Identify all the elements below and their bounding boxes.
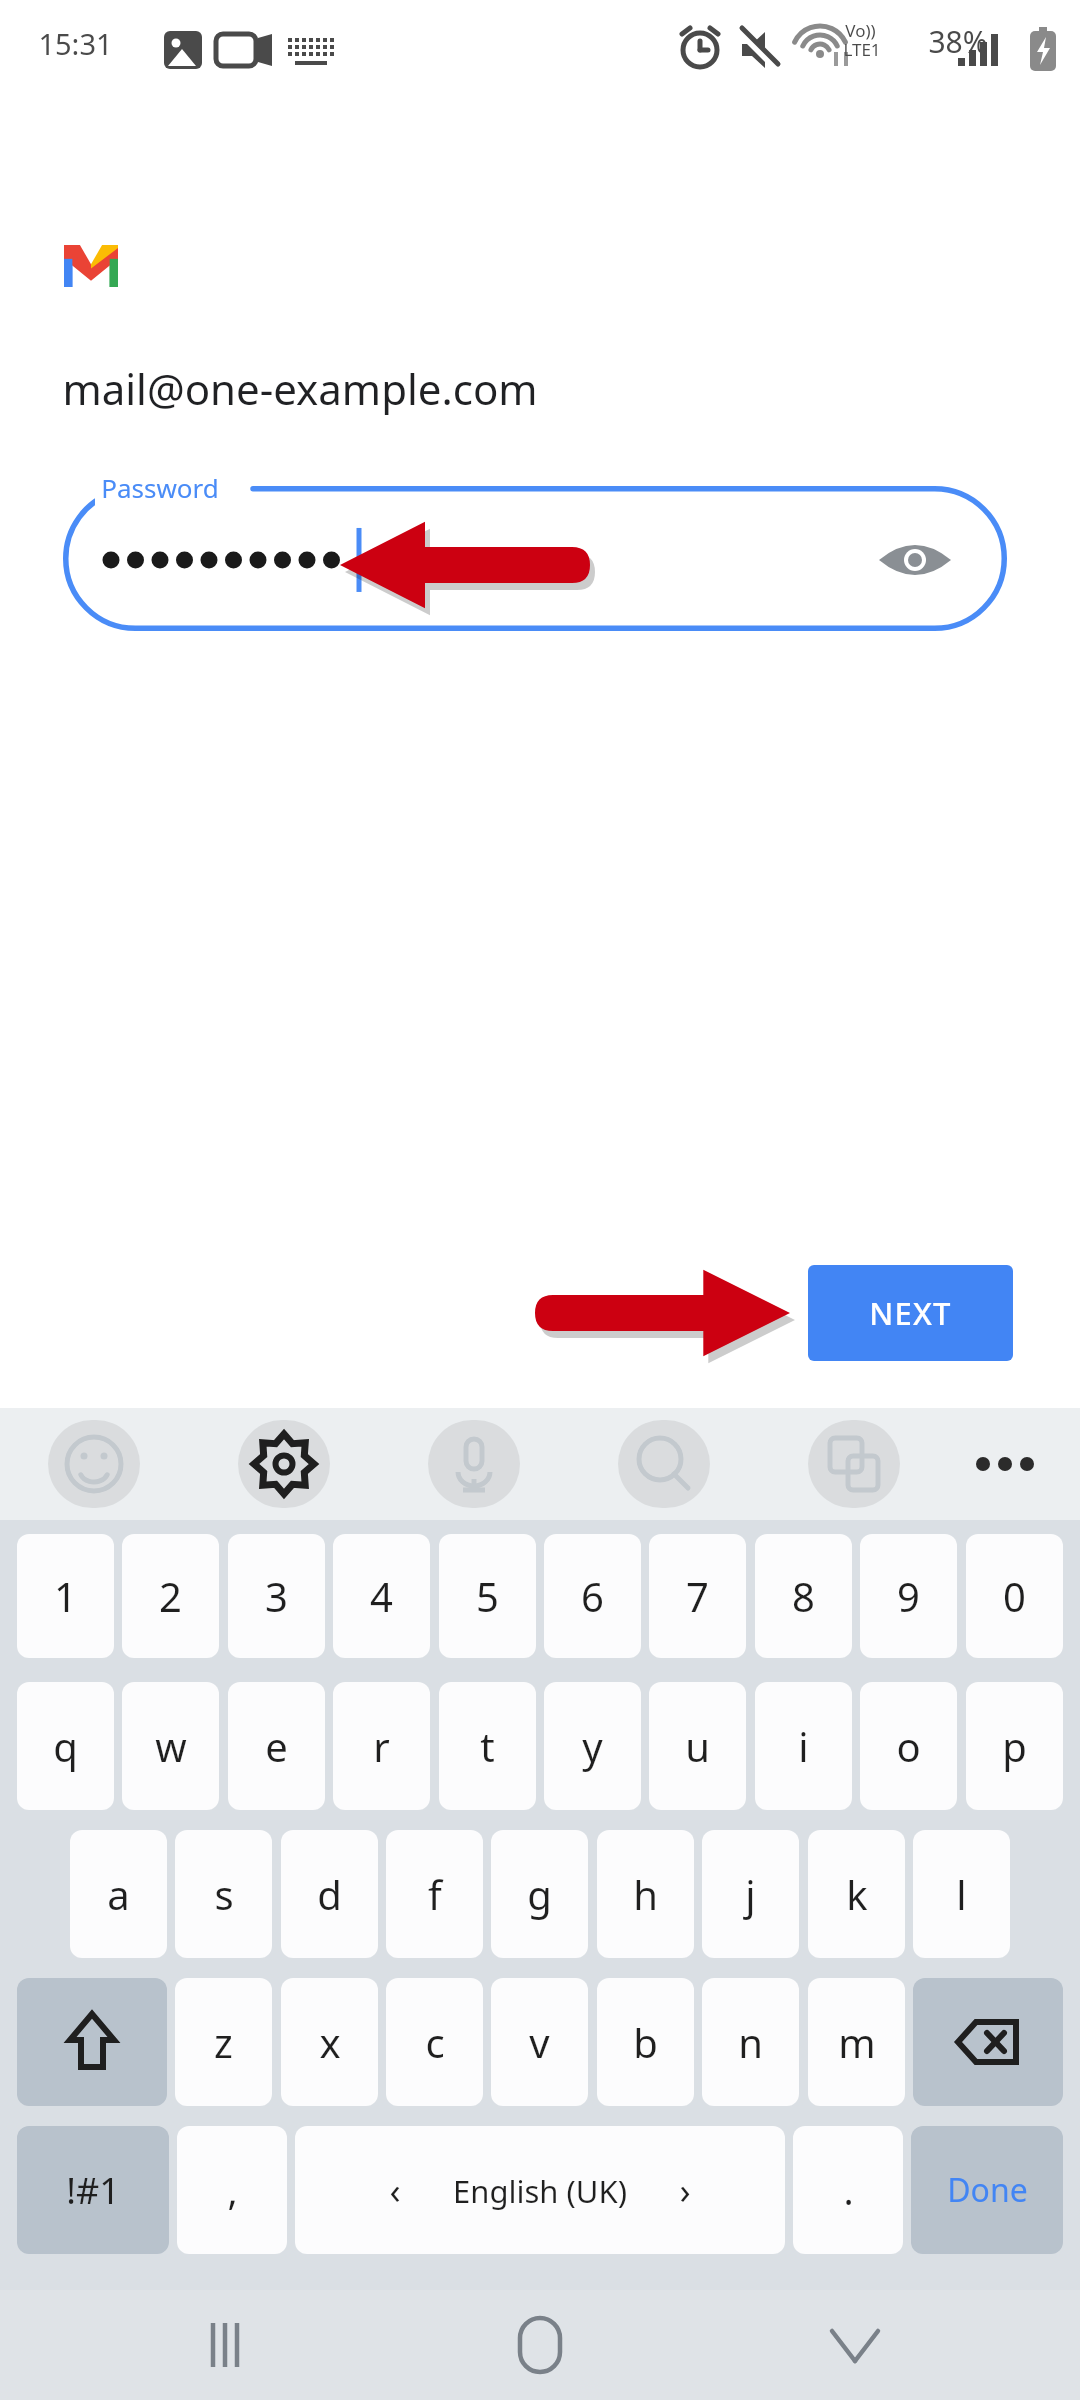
staticText: a: [107, 1867, 130, 1921]
staticText: 3: [265, 1569, 288, 1623]
button[interactable]: 3: [228, 1534, 325, 1658]
staticText: g: [527, 1867, 552, 1921]
button[interactable]: q: [17, 1682, 114, 1810]
button[interactable]: t: [439, 1682, 536, 1810]
button[interactable]: u: [649, 1682, 746, 1810]
staticText: y: [582, 1719, 603, 1773]
button[interactable]: 2: [122, 1534, 219, 1658]
button[interactable]: ‹: [295, 2126, 785, 2254]
button[interactable]: m: [808, 1978, 905, 2106]
button[interactable]: n: [702, 1978, 799, 2106]
staticText: z: [214, 2015, 233, 2069]
staticText: .: [843, 2164, 854, 2216]
button[interactable]: Emoji: [48, 1420, 140, 1508]
button[interactable]: h: [597, 1830, 694, 1958]
button[interactable]: Shift: [17, 1978, 167, 2106]
button[interactable]: .: [793, 2126, 903, 2254]
button[interactable]: ,: [177, 2126, 287, 2254]
button[interactable]: Backspace: [913, 1978, 1063, 2106]
staticText: LTE1: [843, 38, 881, 61]
staticText: q: [53, 1719, 78, 1773]
button[interactable]: Hide keyboard: [810, 2300, 900, 2390]
button[interactable]: Home: [495, 2300, 585, 2390]
button[interactable]: More options: [960, 1420, 1050, 1508]
staticText: ,: [227, 2164, 238, 2216]
button[interactable]: 9: [860, 1534, 957, 1658]
staticText: ‹: [389, 2166, 401, 2215]
button[interactable]: Done: [911, 2126, 1063, 2254]
button[interactable]: i: [755, 1682, 852, 1810]
staticText: Password: [101, 470, 219, 505]
button[interactable]: Keyboard settings: [238, 1420, 330, 1508]
button[interactable]: NEXT: [808, 1265, 1013, 1361]
button[interactable]: 1: [17, 1534, 114, 1658]
button[interactable]: z: [175, 1978, 272, 2106]
staticText: e: [265, 1719, 288, 1773]
staticText: 7: [686, 1569, 709, 1623]
button[interactable]: Translate: [808, 1420, 900, 1508]
button[interactable]: f: [386, 1830, 483, 1958]
button[interactable]: k: [808, 1830, 905, 1958]
button[interactable]: b: [597, 1978, 694, 2106]
staticText: r: [373, 1719, 390, 1773]
button[interactable]: 5: [439, 1534, 536, 1658]
button[interactable]: c: [386, 1978, 483, 2106]
staticText: NEXT: [869, 1292, 952, 1334]
button[interactable]: x: [281, 1978, 378, 2106]
staticText: l: [956, 1867, 967, 1921]
staticText: h: [633, 1867, 658, 1921]
staticText: mail@one-example.com: [62, 360, 538, 417]
button[interactable]: 6: [544, 1534, 641, 1658]
button[interactable]: o: [860, 1682, 957, 1810]
staticText: d: [317, 1867, 342, 1921]
staticText: v: [529, 2015, 550, 2069]
button[interactable]: v: [491, 1978, 588, 2106]
button[interactable]: 8: [755, 1534, 852, 1658]
staticText: 15:31: [38, 24, 113, 63]
staticText: 6: [581, 1569, 604, 1623]
staticText: i: [798, 1719, 809, 1773]
button[interactable]: Voice input: [428, 1420, 520, 1508]
button[interactable]: p: [966, 1682, 1063, 1810]
staticText: 8: [792, 1569, 815, 1623]
staticText: o: [896, 1719, 921, 1773]
button[interactable]: l: [913, 1830, 1010, 1958]
button[interactable]: [63, 486, 1007, 631]
staticText: 5: [476, 1569, 499, 1623]
button[interactable]: y: [544, 1682, 641, 1810]
staticText: 9: [897, 1569, 920, 1623]
button[interactable]: w: [122, 1682, 219, 1810]
button[interactable]: g: [491, 1830, 588, 1958]
button[interactable]: 0: [966, 1534, 1063, 1658]
staticText: t: [480, 1719, 495, 1773]
button[interactable]: s: [175, 1830, 272, 1958]
button[interactable]: !#1: [17, 2126, 169, 2254]
staticText: n: [738, 2015, 763, 2069]
button[interactable]: a: [70, 1830, 167, 1958]
staticText: w: [155, 1719, 187, 1773]
staticText: p: [1002, 1719, 1027, 1773]
staticText: s: [214, 1867, 234, 1921]
staticText: 0: [1003, 1569, 1026, 1623]
staticText: 1: [54, 1569, 77, 1623]
staticText: 38%: [928, 21, 988, 62]
staticText: f: [428, 1867, 442, 1921]
button[interactable]: d: [281, 1830, 378, 1958]
button[interactable]: 4: [333, 1534, 430, 1658]
staticText: !#1: [66, 2166, 120, 2215]
button[interactable]: j: [702, 1830, 799, 1958]
staticText: ›: [679, 2166, 691, 2215]
button[interactable]: r: [333, 1682, 430, 1810]
staticText: English (UK): [453, 2170, 627, 2212]
staticText: m: [838, 2015, 876, 2069]
button[interactable]: e: [228, 1682, 325, 1810]
staticText: Vo)): [845, 19, 876, 42]
staticText: k: [846, 1867, 868, 1921]
button[interactable]: Recent apps: [180, 2300, 270, 2390]
staticText: u: [685, 1719, 710, 1773]
staticText: b: [633, 2015, 658, 2069]
button[interactable]: Search: [618, 1420, 710, 1508]
staticText: j: [745, 1867, 756, 1921]
button[interactable]: 7: [649, 1534, 746, 1658]
staticText: x: [319, 2015, 341, 2069]
